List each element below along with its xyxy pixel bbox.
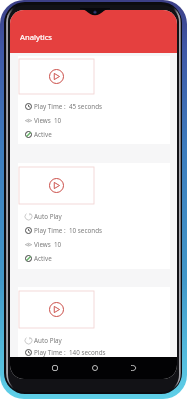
staticText: 10 xyxy=(54,116,62,125)
button[interactable]: Play Time : xyxy=(18,56,170,144)
staticText: Views xyxy=(34,240,51,249)
staticText: 10 seconds xyxy=(69,226,103,235)
button[interactable]: Recent apps xyxy=(46,357,64,379)
staticText: Play Time : xyxy=(34,102,66,111)
button[interactable]: Back xyxy=(124,357,142,379)
button[interactable]: Auto Play xyxy=(18,287,170,358)
staticText: Active xyxy=(34,254,52,263)
staticText: 10 xyxy=(54,240,62,249)
staticText: 140 seconds xyxy=(69,348,106,357)
button[interactable]: Auto Play xyxy=(18,163,170,269)
staticText: Analytics xyxy=(20,32,53,42)
staticText: Auto Play xyxy=(34,212,62,221)
staticText: 45 seconds xyxy=(69,102,103,111)
button[interactable]: Home xyxy=(86,357,104,379)
staticText: Auto Play xyxy=(34,336,62,345)
staticText: Views xyxy=(34,116,51,125)
staticText: Play Time : xyxy=(34,348,66,357)
staticText: Active xyxy=(34,130,52,139)
staticText: Play Time : xyxy=(34,226,66,235)
